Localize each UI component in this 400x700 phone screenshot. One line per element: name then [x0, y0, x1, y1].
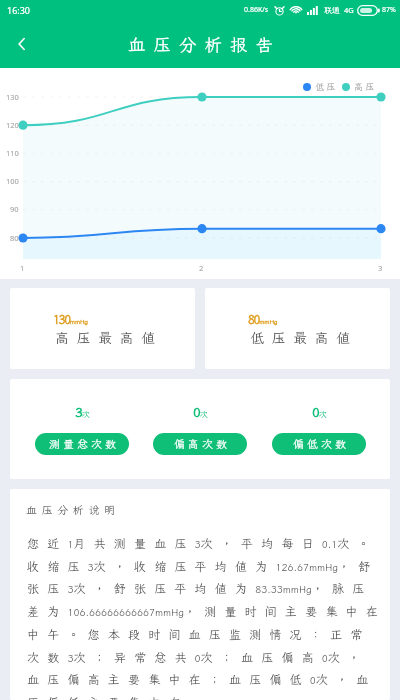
staticText: 0.86K/s — [244, 5, 269, 15]
staticText: 联通 — [324, 5, 340, 16]
staticText: 90 — [10, 204, 19, 214]
staticText: 16:30 — [7, 4, 31, 16]
staticText: 1 — [20, 263, 25, 273]
staticText: 血压偏高主要集中在；血压偏低0次，血 — [27, 672, 377, 688]
button[interactable]: 偏高次数 — [153, 433, 247, 455]
button[interactable]: Back — [0, 22, 44, 66]
staticText: 110 — [6, 148, 19, 158]
staticText: 偏高次数 — [174, 437, 230, 451]
staticText: 张压3次，舒张压平均值为83.33mmHg，脉压 — [27, 581, 373, 597]
staticText: 80mmHg — [248, 312, 278, 327]
staticText: 您近1月共测量血压3次，平均每日0.1次。 — [27, 536, 378, 552]
button[interactable]: 偏低次数 — [272, 433, 366, 455]
staticText: 血压分析说明 — [26, 503, 120, 517]
button[interactable]: 130mmHg — [10, 288, 195, 369]
staticText: 0次 — [193, 404, 208, 421]
staticText: 差为106.66666666667mmHg，测量时间主要集中在 — [27, 604, 387, 620]
staticText: 测量总次数 — [49, 437, 119, 451]
button[interactable]: 测量总次数 — [35, 433, 129, 455]
staticText: 偏低次数 — [293, 437, 349, 451]
staticText: 血压分析报告 — [128, 33, 281, 56]
staticText: 3 — [378, 263, 383, 273]
staticText: 0次 — [312, 404, 327, 421]
staticText: 130 — [6, 92, 19, 102]
staticText: 130mmHg — [53, 312, 88, 327]
staticText: 次数3次；异常总共0次；血压偏高0次， — [27, 650, 369, 666]
staticText: 高压 — [354, 81, 378, 93]
staticText: 3次 — [75, 404, 90, 421]
staticText: 收缩压3次，收缩压平均值为126.67mmHg，舒 — [27, 559, 379, 575]
staticText: 2 — [199, 263, 204, 273]
button[interactable]: 80mmHg — [205, 288, 390, 369]
staticText: 高压最高值 — [55, 329, 163, 347]
staticText: 低压 — [315, 81, 339, 93]
staticText: 压偏低主要集中在。 — [27, 695, 209, 700]
staticText: 4G — [344, 5, 354, 15]
staticText: 87% — [382, 5, 396, 15]
staticText: 低压最高值 — [250, 329, 358, 347]
staticText: 100 — [6, 176, 19, 186]
staticText: 中午。您本段时间血压监测情况：正常 — [27, 627, 371, 643]
staticText: 120 — [6, 120, 19, 130]
staticText: 80 — [10, 233, 19, 243]
